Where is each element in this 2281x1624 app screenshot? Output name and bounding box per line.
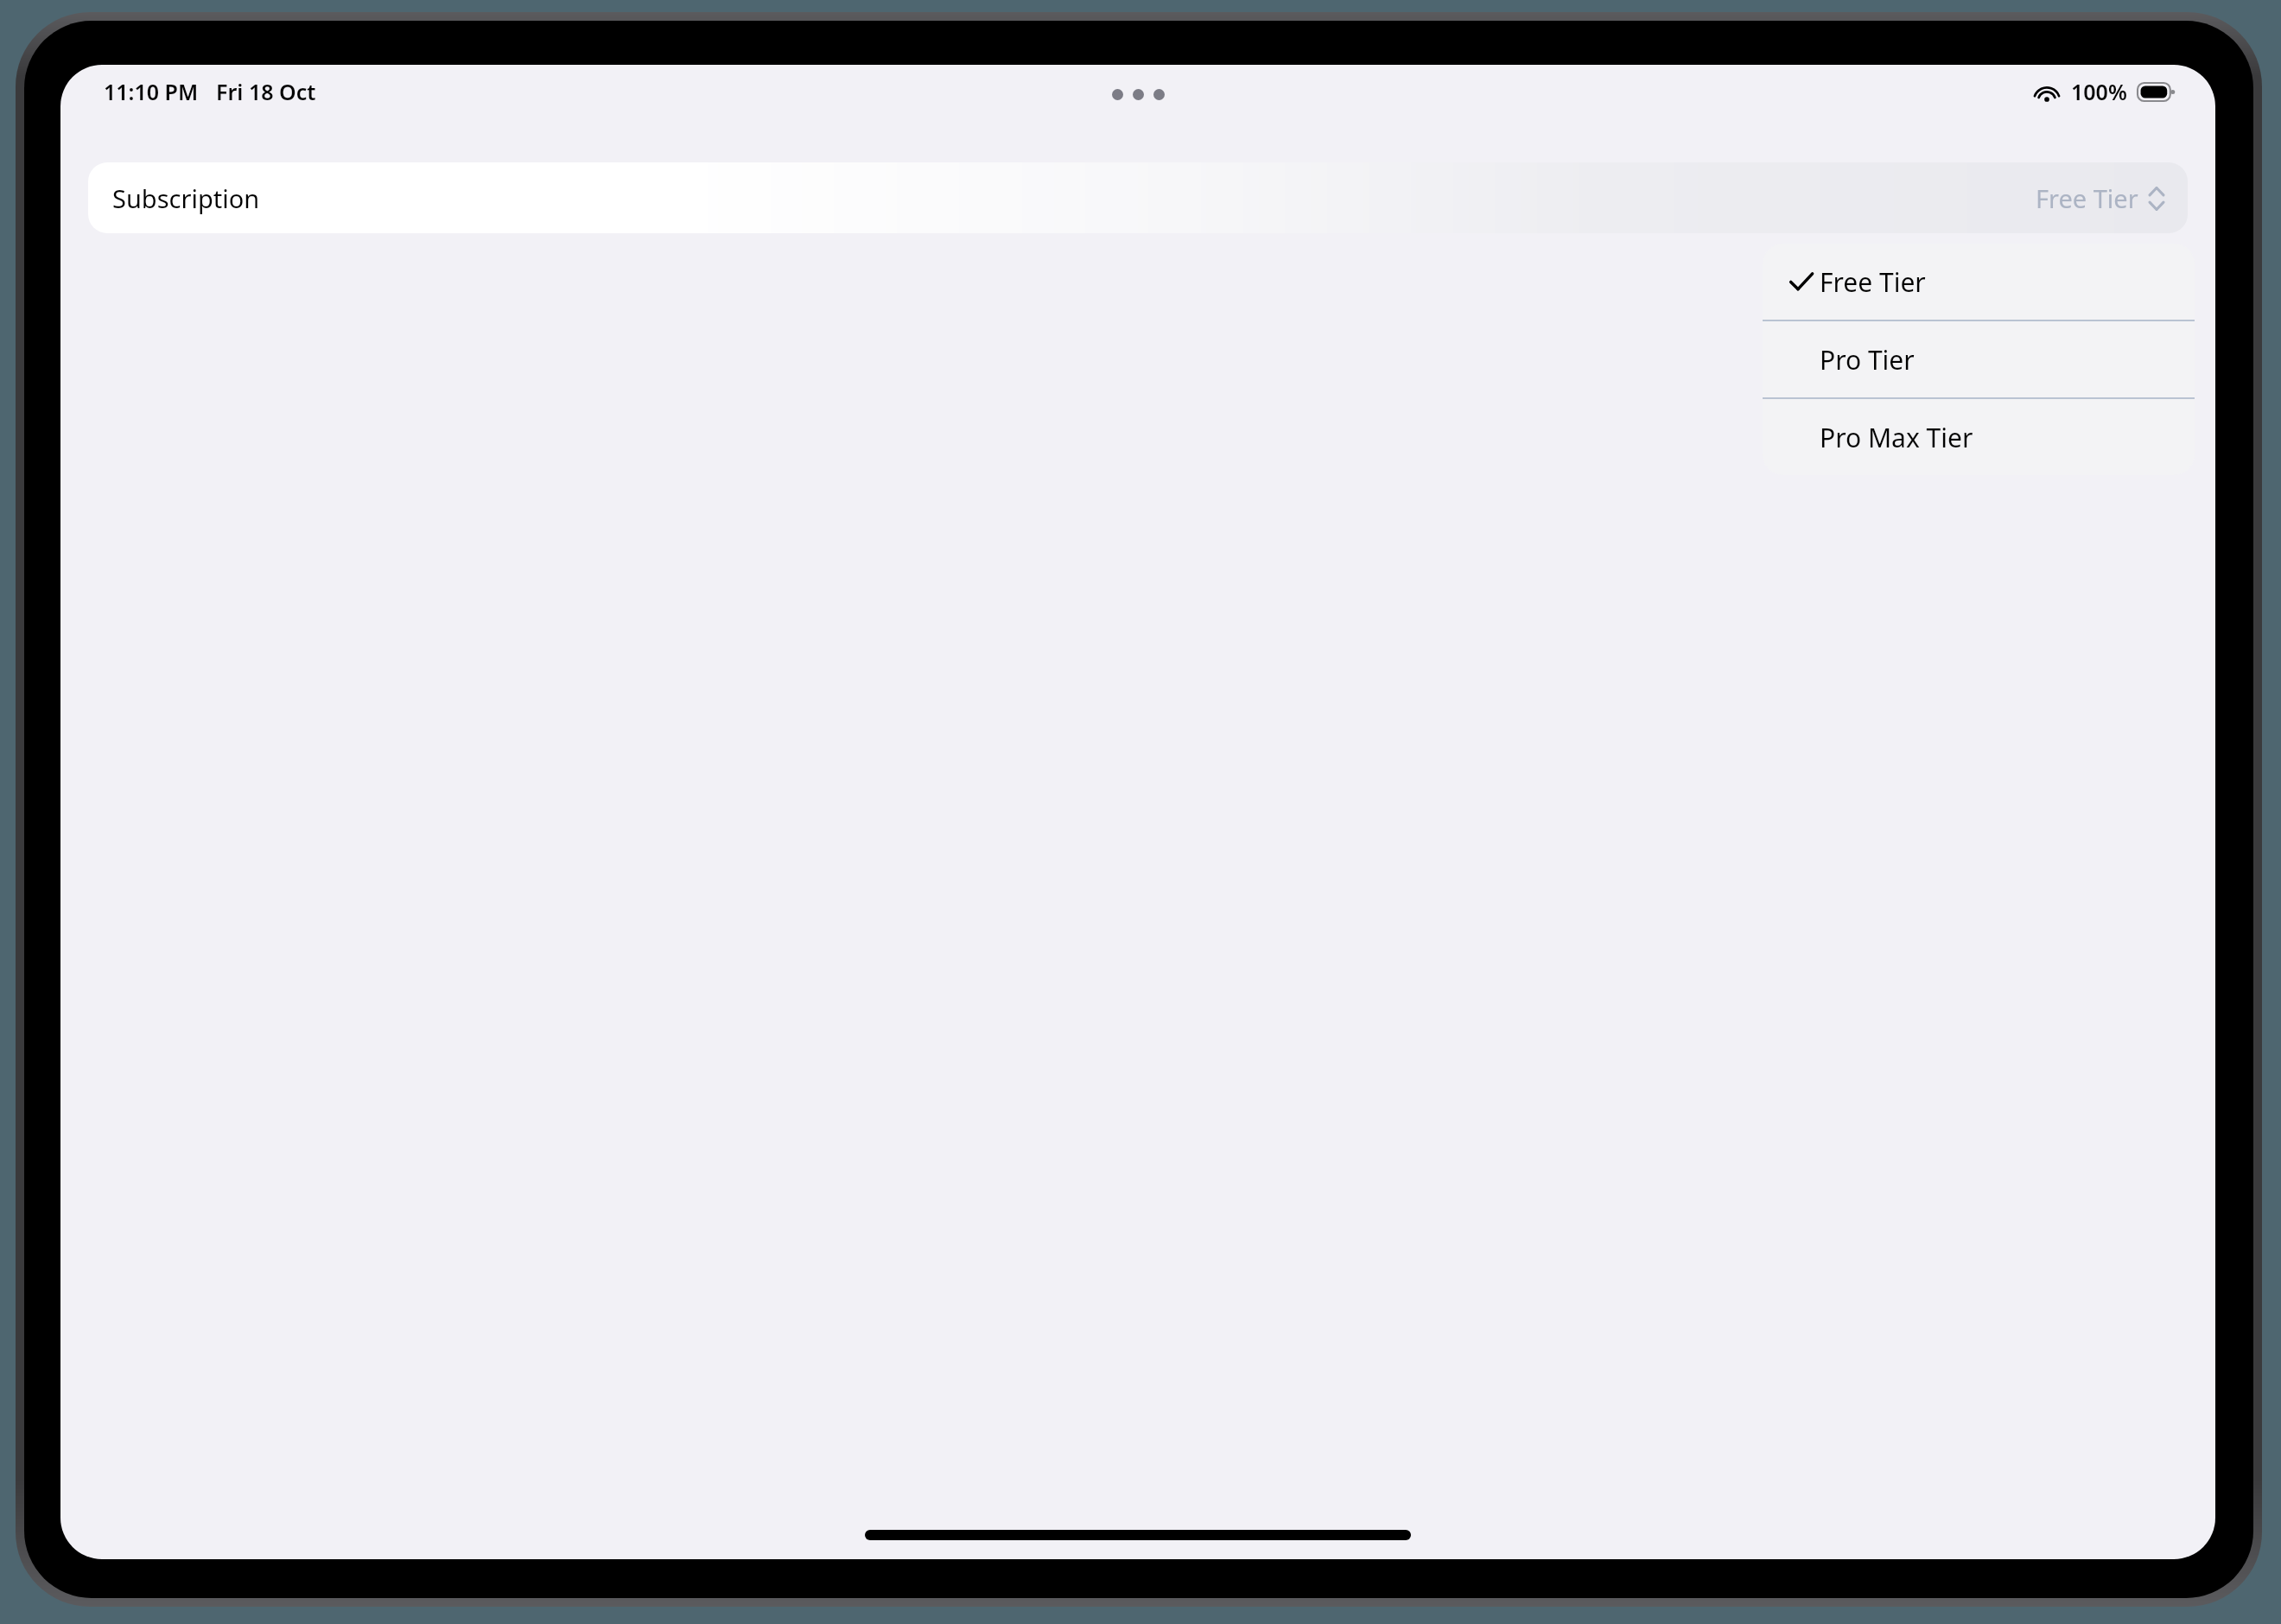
- button[interactable]: Pro Tier: [1763, 321, 2195, 397]
- staticText: 11:10 PM: [104, 77, 199, 106]
- button[interactable]: Multitasking controls: [1103, 82, 1173, 107]
- staticText: Free Tier: [1820, 264, 1926, 300]
- staticText: Pro Max Tier: [1820, 420, 1973, 455]
- button[interactable]: Pro Max Tier: [1763, 399, 2195, 475]
- button[interactable]: Subscription: [88, 162, 2188, 233]
- staticText: Subscription: [112, 181, 260, 215]
- staticText: 100%: [2071, 77, 2127, 106]
- staticText: Pro Tier: [1820, 342, 1915, 377]
- staticText: Fri 18 Oct: [216, 77, 316, 106]
- staticText: Free Tier: [2036, 181, 2138, 215]
- button[interactable]: Free Tier: [1763, 244, 2195, 320]
